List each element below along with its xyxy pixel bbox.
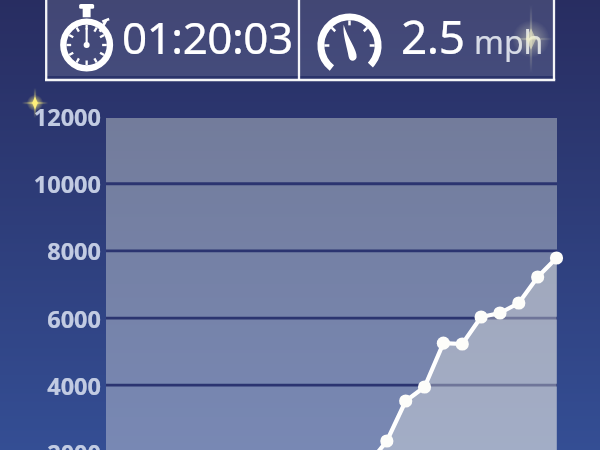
staticText: mph bbox=[474, 20, 544, 64]
staticText: 6000 bbox=[0, 303, 101, 335]
other: Current speed bbox=[315, 11, 384, 80]
staticText: 10000 bbox=[0, 168, 101, 200]
staticText: 01:20:03 bbox=[122, 7, 293, 67]
staticText: 8000 bbox=[0, 235, 101, 267]
button[interactable]: Current speed bbox=[298, 0, 553, 78]
staticText: 4000 bbox=[0, 370, 101, 402]
staticText: 12000 bbox=[0, 101, 101, 133]
staticText: 2.5 bbox=[401, 5, 465, 68]
staticText: 2000 bbox=[0, 437, 101, 450]
other: Elapsed time bbox=[51, 0, 123, 72]
button[interactable]: Elapsed time bbox=[47, 0, 297, 78]
